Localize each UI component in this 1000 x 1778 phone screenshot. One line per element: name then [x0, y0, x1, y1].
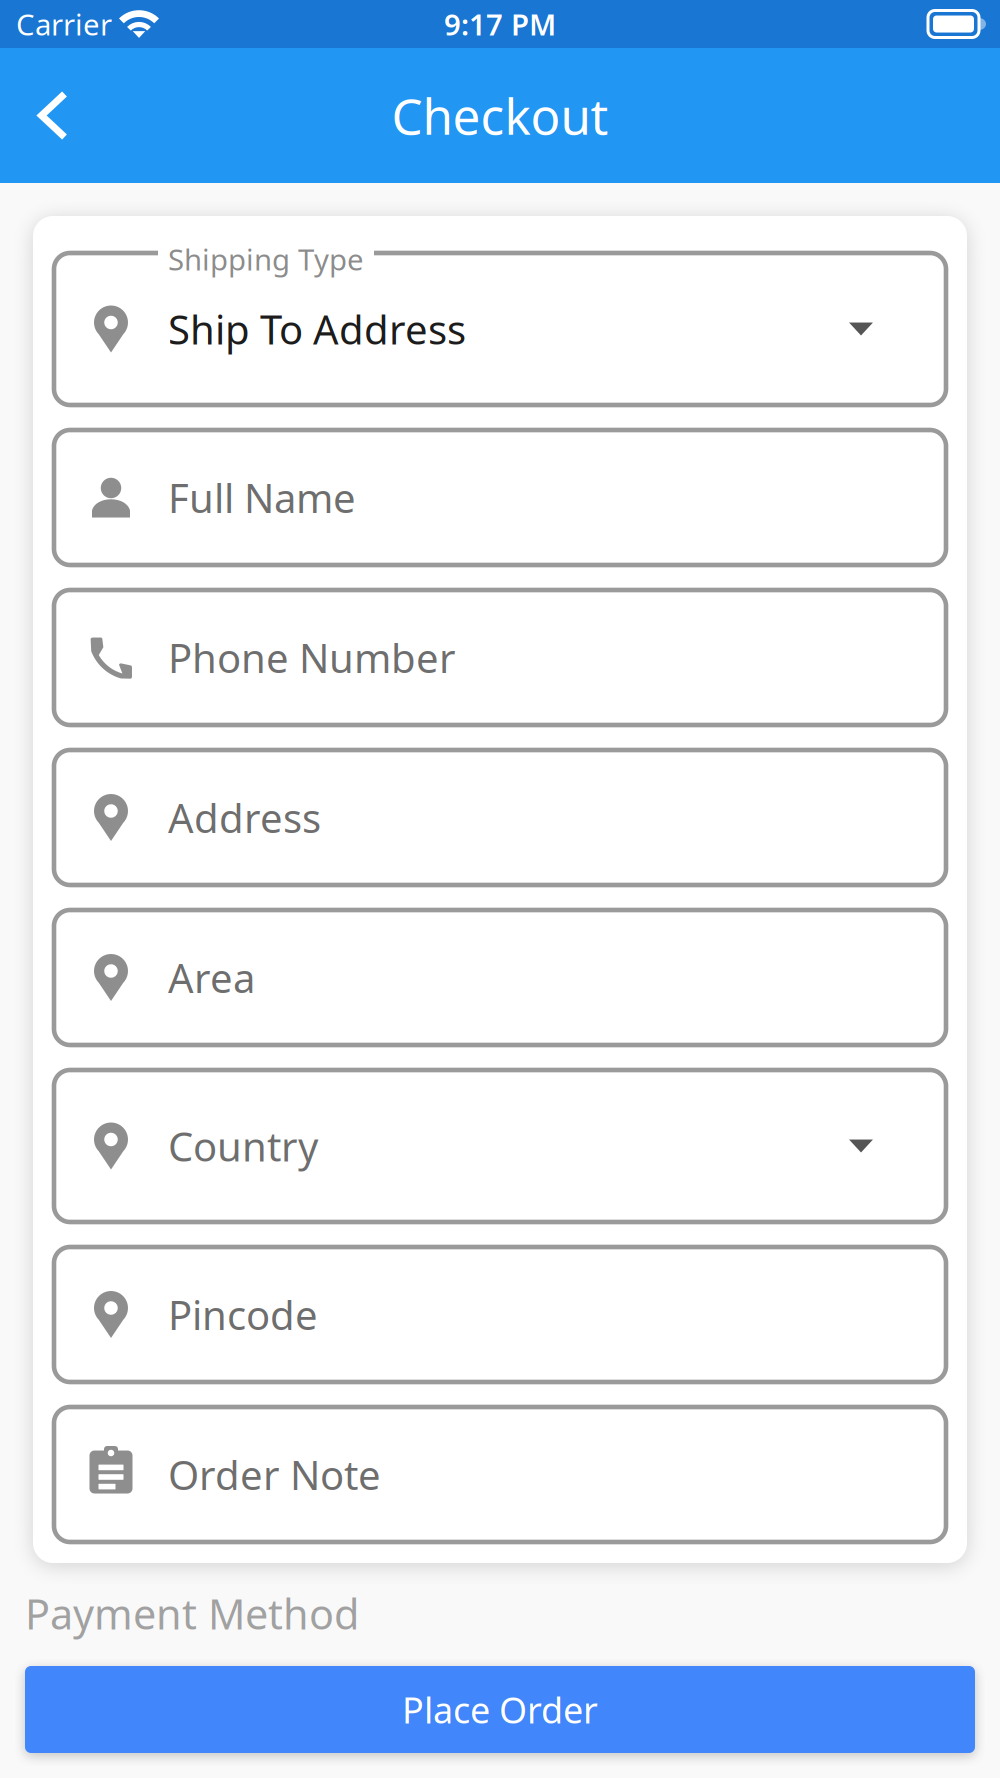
staticText: Order Note [168, 1448, 381, 1501]
staticText: Country [168, 1119, 318, 1172]
button[interactable]: Order Note [54, 1407, 946, 1542]
staticText: Pincode [168, 1288, 318, 1341]
staticText: Full Name [168, 471, 356, 524]
staticText: Shipping Type [168, 239, 364, 278]
staticText: Phone Number [168, 631, 456, 684]
staticText: Area [168, 951, 255, 1004]
button[interactable]: Full Name [54, 430, 946, 565]
button[interactable]: Country [54, 1070, 946, 1222]
button[interactable]: Ship To Address [54, 253, 946, 405]
staticText: Carrier [16, 4, 112, 43]
button[interactable]: Pincode [54, 1247, 946, 1382]
button[interactable]: Back [0, 59, 106, 171]
staticText: Checkout [391, 83, 608, 148]
staticText: Address [168, 791, 321, 844]
staticText: Payment Method [25, 1586, 359, 1641]
button[interactable]: Area [54, 910, 946, 1045]
button[interactable]: Phone Number [54, 590, 946, 725]
staticText: 9:17 PM [444, 4, 556, 43]
button[interactable]: Place Order [25, 1666, 975, 1753]
staticText: Ship To Address [168, 302, 466, 355]
button[interactable]: Address [54, 750, 946, 885]
staticText: Place Order [402, 1686, 598, 1733]
